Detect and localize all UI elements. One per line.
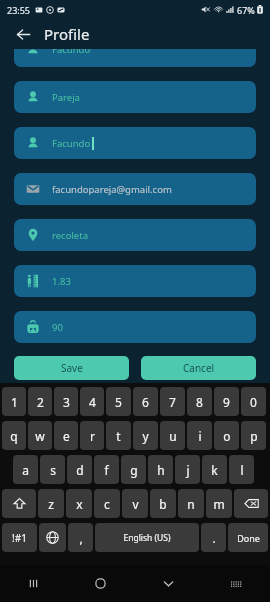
- button[interactable]: i: [187, 421, 212, 450]
- button[interactable]: Facundo: [14, 49, 256, 67]
- staticText: p: [250, 428, 258, 444]
- button[interactable]: 90: [14, 311, 256, 343]
- button[interactable]: 9: [214, 387, 239, 416]
- staticText: Facundo: [52, 137, 91, 150]
- staticText: 1: [11, 394, 18, 410]
- button[interactable]: Save: [14, 356, 129, 380]
- button[interactable]: n: [178, 489, 204, 518]
- button[interactable]: z: [38, 489, 64, 518]
- button[interactable]: Backspace: [234, 489, 268, 518]
- button[interactable]: 6: [133, 387, 158, 416]
- staticText: 3: [63, 394, 70, 410]
- staticText: k: [211, 462, 218, 478]
- staticText: t: [116, 428, 121, 444]
- staticText: ,: [79, 530, 83, 546]
- staticText: o: [223, 428, 231, 444]
- button[interactable]: v: [122, 489, 148, 518]
- staticText: f: [104, 462, 109, 478]
- button[interactable]: c: [94, 489, 120, 518]
- button[interactable]: s: [40, 455, 65, 484]
- staticText: r: [90, 428, 95, 444]
- button[interactable]: Change language: [39, 523, 66, 552]
- button[interactable]: Home: [67, 565, 134, 602]
- staticText: g: [130, 462, 138, 478]
- staticText: j: [186, 462, 190, 478]
- button[interactable]: ,: [68, 523, 93, 552]
- button[interactable]: k: [202, 455, 227, 484]
- staticText: 5: [115, 394, 122, 410]
- button[interactable]: Done: [228, 523, 268, 552]
- button[interactable]: y: [133, 421, 158, 450]
- button[interactable]: recoleta: [14, 219, 256, 251]
- button[interactable]: m: [206, 489, 232, 518]
- button[interactable]: Keyboard layout: [202, 565, 270, 602]
- button[interactable]: Recents: [0, 565, 67, 602]
- button[interactable]: a: [13, 455, 38, 484]
- button[interactable]: Pareja: [14, 81, 256, 113]
- button[interactable]: English (US): [95, 523, 199, 552]
- staticText: 9: [223, 394, 230, 410]
- button[interactable]: g: [121, 455, 146, 484]
- staticText: English (US): [123, 532, 171, 544]
- button[interactable]: p: [241, 421, 266, 450]
- button[interactable]: d: [67, 455, 92, 484]
- button[interactable]: 8: [187, 387, 212, 416]
- staticText: 67%: [237, 4, 255, 16]
- staticText: .: [212, 530, 216, 546]
- button[interactable]: 1: [2, 387, 26, 416]
- button[interactable]: Back: [12, 23, 34, 45]
- button[interactable]: Facundo: [14, 127, 256, 159]
- button[interactable]: 7: [160, 387, 185, 416]
- staticText: 8: [196, 394, 203, 410]
- button[interactable]: Hide keyboard: [134, 565, 202, 602]
- button[interactable]: facundopareja@gmail.com: [14, 173, 256, 205]
- staticText: Done: [237, 532, 260, 544]
- staticText: facundopareja@gmail.com: [52, 183, 172, 196]
- button[interactable]: Shift: [2, 489, 36, 518]
- staticText: y: [142, 428, 149, 444]
- button[interactable]: f: [94, 455, 119, 484]
- staticText: c: [104, 496, 110, 512]
- staticText: u: [169, 428, 177, 444]
- button[interactable]: t: [106, 421, 131, 450]
- button[interactable]: .: [201, 523, 226, 552]
- staticText: 23:55: [7, 4, 31, 16]
- staticText: 4: [89, 394, 96, 410]
- button[interactable]: e: [54, 421, 78, 450]
- button[interactable]: j: [175, 455, 200, 484]
- staticText: Pareja: [52, 91, 80, 104]
- staticText: Facundo: [52, 49, 91, 56]
- button[interactable]: l: [229, 455, 254, 484]
- staticText: s: [50, 462, 56, 478]
- staticText: a: [22, 462, 29, 478]
- staticText: h: [157, 462, 165, 478]
- staticText: Save: [61, 361, 83, 375]
- button[interactable]: 3: [54, 387, 78, 416]
- staticText: w: [35, 428, 45, 444]
- button[interactable]: 1.83: [14, 265, 256, 297]
- staticText: !#1: [12, 531, 27, 545]
- staticText: recoleta: [52, 229, 88, 242]
- button[interactable]: Cancel: [141, 356, 256, 380]
- button[interactable]: o: [214, 421, 239, 450]
- button[interactable]: !#1: [2, 523, 37, 552]
- button[interactable]: u: [160, 421, 185, 450]
- button[interactable]: q: [2, 421, 26, 450]
- staticText: i: [198, 428, 202, 444]
- button[interactable]: 0: [241, 387, 266, 416]
- staticText: z: [48, 496, 54, 512]
- staticText: 2: [37, 394, 44, 410]
- staticText: x: [76, 496, 83, 512]
- button[interactable]: h: [148, 455, 173, 484]
- button[interactable]: 2: [28, 387, 52, 416]
- button[interactable]: 4: [80, 387, 104, 416]
- button[interactable]: r: [80, 421, 104, 450]
- button[interactable]: b: [150, 489, 176, 518]
- staticText: m: [213, 496, 225, 512]
- staticText: 6: [142, 394, 149, 410]
- button[interactable]: 5: [106, 387, 131, 416]
- button[interactable]: x: [66, 489, 92, 518]
- staticText: q: [10, 428, 18, 444]
- button[interactable]: w: [28, 421, 52, 450]
- staticText: v: [132, 496, 139, 512]
